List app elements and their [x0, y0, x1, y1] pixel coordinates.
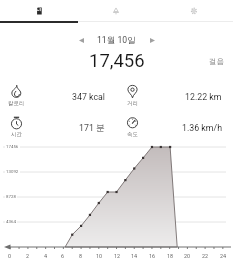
button[interactable]: 시간 [0, 116, 116, 138]
button[interactable]: 칼로리 [0, 85, 116, 107]
button[interactable]: Alarm [77, 0, 155, 21]
staticText: 20 [184, 253, 191, 259]
staticText: 8728 [6, 194, 16, 199]
staticText: 0 [8, 253, 12, 259]
staticText: 12 [114, 253, 121, 259]
staticText: 2 [26, 253, 30, 259]
staticText: 22 [202, 253, 209, 259]
staticText: 11월 10일 [97, 35, 136, 46]
staticText: 칼로리 [8, 100, 25, 107]
staticText: 6 [61, 253, 65, 259]
button[interactable]: Next day [145, 33, 159, 47]
button[interactable]: 속도 [116, 116, 233, 138]
staticText: 347 kcal [72, 92, 105, 102]
staticText: 시간 [11, 131, 22, 138]
staticText: 속도 [127, 131, 138, 138]
staticText: 17456 [6, 144, 19, 149]
staticText: 8 [79, 253, 83, 259]
staticText: 4 [44, 253, 48, 259]
staticText: 걸음 [209, 57, 224, 66]
staticText: 4364 [6, 219, 16, 224]
staticText: 10 [96, 253, 103, 259]
staticText: 24 [220, 253, 227, 259]
button[interactable]: Activity [0, 0, 77, 21]
staticText: 12.22 km [185, 92, 222, 102]
button[interactable]: Settings [155, 0, 233, 21]
button[interactable]: 거리 [116, 85, 233, 107]
staticText: 1.36 km/h [182, 123, 222, 133]
staticText: 13092 [6, 169, 19, 174]
button[interactable]: Previous day [74, 33, 88, 47]
staticText: 18 [167, 253, 174, 259]
staticText: 14 [131, 253, 138, 259]
staticText: 171 분 [79, 123, 105, 134]
staticText: 거리 [127, 100, 138, 107]
staticText: 17,456 [89, 50, 145, 70]
staticText: 16 [149, 253, 156, 259]
